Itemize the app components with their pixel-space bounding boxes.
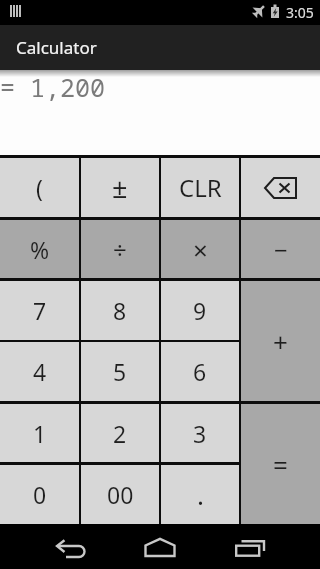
staticText: = <box>273 447 288 482</box>
button[interactable]: ± <box>81 158 159 217</box>
staticText: 3:05 <box>286 3 314 22</box>
staticText: × <box>193 232 208 267</box>
button[interactable]: 5 <box>81 342 159 401</box>
staticText: 2 <box>113 418 127 449</box>
staticText: + <box>273 324 288 359</box>
button[interactable]: 6 <box>161 342 239 401</box>
button[interactable]: − <box>241 220 320 278</box>
staticText: 3 <box>193 418 207 449</box>
button[interactable] <box>113 524 207 569</box>
staticText: = 1,200 <box>0 70 106 104</box>
staticText: ÷ <box>113 233 127 266</box>
button[interactable] <box>203 524 297 569</box>
button[interactable] <box>24 524 118 569</box>
button[interactable]: + <box>241 281 320 401</box>
staticText: 6 <box>193 356 207 387</box>
button[interactable]: ÷ <box>81 220 159 278</box>
button[interactable]: × <box>161 220 239 278</box>
button[interactable]: 1 <box>0 404 79 462</box>
staticText: 7 <box>33 295 47 326</box>
button[interactable]: 00 <box>81 465 159 524</box>
staticText: Calculator <box>16 36 97 59</box>
button[interactable]: 3 <box>161 404 239 462</box>
button[interactable]: 8 <box>81 281 159 340</box>
button[interactable]: = <box>241 404 320 524</box>
button[interactable]: ( <box>0 158 79 217</box>
staticText: 5 <box>113 356 127 387</box>
button[interactable]: 7 <box>0 281 79 340</box>
staticText: − <box>274 233 288 266</box>
staticText: 00 <box>107 479 134 510</box>
staticText: ± <box>112 169 128 206</box>
staticText: % <box>30 234 50 265</box>
staticText: 4 <box>33 356 47 387</box>
staticText: 8 <box>113 295 127 326</box>
staticText: CLR <box>179 171 222 204</box>
staticText: ( <box>36 172 43 203</box>
button[interactable]: 4 <box>0 342 79 401</box>
button[interactable]: 2 <box>81 404 159 462</box>
button[interactable] <box>241 158 320 217</box>
staticText: 1 <box>33 418 47 449</box>
staticText: 0 <box>33 479 47 510</box>
button[interactable]: CLR <box>161 158 239 217</box>
staticText: . <box>197 477 204 512</box>
button[interactable]: 0 <box>0 465 79 524</box>
staticText: 9 <box>193 295 207 326</box>
button[interactable]: 9 <box>161 281 239 340</box>
button[interactable]: . <box>161 465 239 524</box>
button[interactable]: % <box>0 220 79 278</box>
